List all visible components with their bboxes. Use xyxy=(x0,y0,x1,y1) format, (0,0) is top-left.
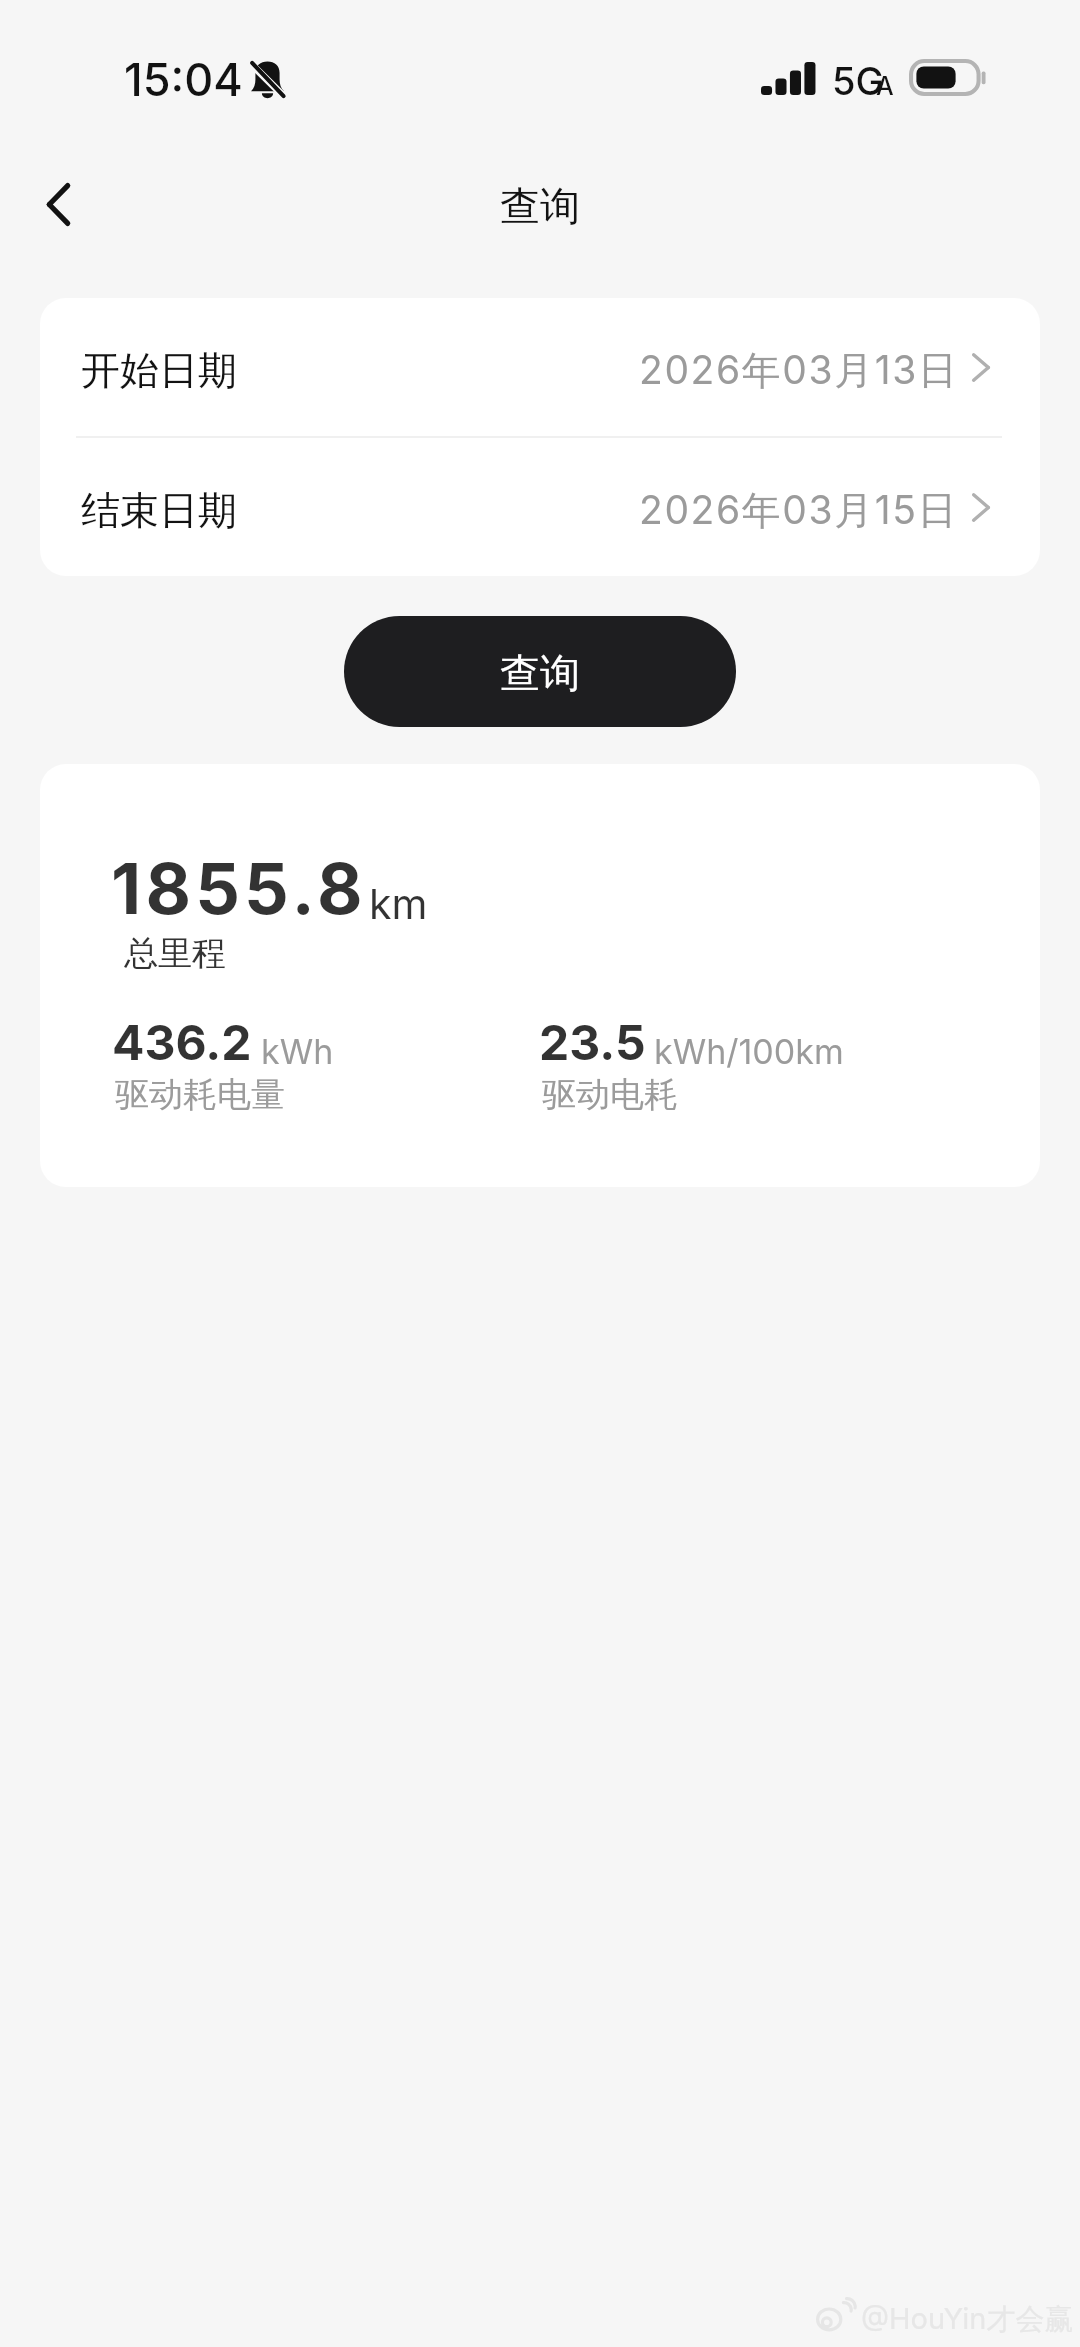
staticText: 23.5 xyxy=(539,1013,646,1071)
staticText: 驱动电耗 xyxy=(542,1073,678,1116)
button[interactable]: 查询 xyxy=(344,616,736,727)
staticText: 总里程 xyxy=(124,932,226,975)
staticText: 1855.8 xyxy=(111,846,367,931)
staticText: 5G xyxy=(832,58,884,104)
staticText: 2026年03月13日 xyxy=(639,346,959,395)
staticText: @HouYin才会赢 xyxy=(861,2301,1074,2338)
staticText: 查询 xyxy=(500,181,580,231)
staticText: 查询 xyxy=(500,648,580,698)
staticText: kWh/100km xyxy=(654,1031,844,1072)
button[interactable]: 开始日期 xyxy=(40,298,1040,436)
staticText: 结束日期 xyxy=(81,486,237,535)
button[interactable]: Back xyxy=(12,158,104,250)
staticText: kWh xyxy=(261,1031,334,1072)
staticText: 开始日期 xyxy=(81,346,237,395)
staticText: 436.2 xyxy=(112,1013,252,1071)
staticText: 2026年03月15日 xyxy=(639,486,959,535)
staticText: A xyxy=(876,71,894,101)
staticText: km xyxy=(369,879,428,929)
button[interactable]: 结束日期 xyxy=(40,438,1040,576)
staticText: 驱动耗电量 xyxy=(115,1073,285,1116)
staticText: 15:04 xyxy=(124,52,243,106)
